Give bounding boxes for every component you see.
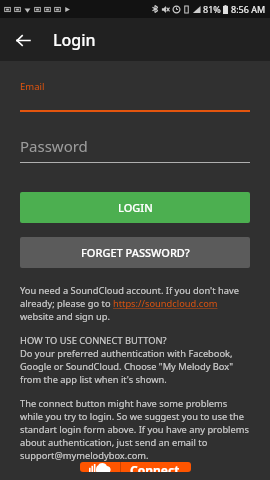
staticText: LOGIN: [118, 200, 153, 215]
staticText: HOW TO USE CONNECT BUTTON? Do your prefe…: [20, 334, 250, 386]
button[interactable]: LOGIN: [20, 192, 250, 223]
button[interactable]: Connect: [80, 462, 191, 472]
staticText: The connect button might have some probl…: [20, 397, 250, 462]
button[interactable]: Back: [8, 25, 38, 55]
staticText: Email: [20, 80, 45, 93]
button[interactable]: FORGET PASSWORD?: [20, 237, 250, 268]
staticText: 81%: [203, 3, 221, 15]
staticText: Login: [53, 29, 96, 51]
staticText: Password: [20, 136, 88, 156]
staticText: You need a SoundCloud account. If you do…: [20, 284, 250, 323]
staticText: 8:56 AM: [231, 3, 266, 15]
staticText: Connect: [130, 462, 180, 472]
staticText: FORGET PASSWORD?: [81, 245, 190, 260]
